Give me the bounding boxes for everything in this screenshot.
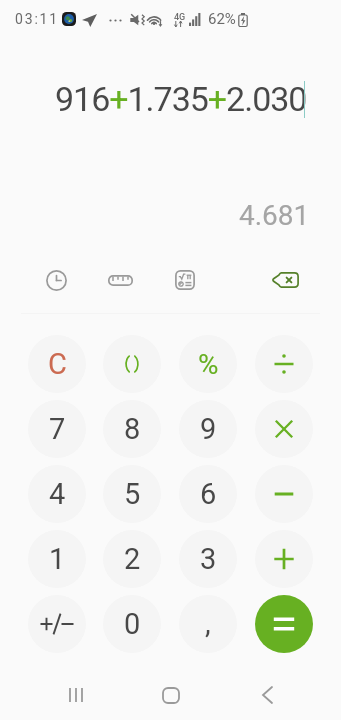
staticText: 6 bbox=[200, 477, 217, 511]
staticText: 9 bbox=[200, 412, 217, 446]
staticText: 916+1.735+2.030 bbox=[55, 79, 307, 119]
button[interactable]: 1 bbox=[28, 530, 86, 588]
button[interactable]: 7 bbox=[28, 400, 86, 458]
staticText: 4.681 bbox=[239, 199, 310, 232]
button[interactable]: 8 bbox=[103, 400, 161, 458]
button[interactable]: Unit converter bbox=[98, 258, 142, 302]
button[interactable]: Recents bbox=[54, 673, 98, 717]
button[interactable]: Home bbox=[149, 673, 193, 717]
button[interactable]: 2 bbox=[103, 530, 161, 588]
button[interactable]: Decimal comma bbox=[179, 595, 237, 653]
staticText: 3 bbox=[200, 542, 217, 576]
staticText: 62% bbox=[208, 10, 236, 28]
staticText: 8 bbox=[124, 412, 141, 446]
button[interactable]: 0 bbox=[103, 595, 161, 653]
button[interactable]: Back bbox=[245, 673, 289, 717]
staticText: 4 bbox=[49, 477, 66, 511]
button[interactable]: Equals bbox=[255, 595, 313, 653]
button[interactable]: History bbox=[34, 258, 78, 302]
staticText: % bbox=[198, 348, 219, 381]
staticText: 0 bbox=[124, 607, 141, 641]
button[interactable]: Percent bbox=[179, 335, 237, 393]
button[interactable]: 4 bbox=[28, 465, 86, 523]
staticText: 7 bbox=[49, 412, 66, 446]
staticText: 1 bbox=[49, 542, 66, 576]
button[interactable]: 9 bbox=[179, 400, 237, 458]
staticText: C bbox=[48, 347, 67, 381]
button[interactable]: Subtract bbox=[255, 465, 313, 523]
button[interactable]: 3 bbox=[179, 530, 237, 588]
button[interactable]: Parentheses bbox=[103, 335, 161, 393]
button[interactable]: Clear bbox=[28, 335, 86, 393]
button[interactable]: 6 bbox=[179, 465, 237, 523]
button[interactable]: Add bbox=[255, 530, 313, 588]
button[interactable]: Backspace bbox=[263, 258, 307, 302]
staticText: , bbox=[205, 606, 211, 640]
staticText: 2 bbox=[124, 542, 141, 576]
button[interactable]: Multiply bbox=[255, 400, 313, 458]
staticText: 4G bbox=[174, 12, 186, 23]
button[interactable]: Plus minus bbox=[28, 595, 86, 653]
button[interactable]: Scientific calculator bbox=[163, 258, 207, 302]
staticText: 5 bbox=[124, 477, 141, 511]
staticText: 03:11 bbox=[15, 11, 59, 27]
button[interactable]: Divide bbox=[255, 335, 313, 393]
button[interactable]: 5 bbox=[103, 465, 161, 523]
